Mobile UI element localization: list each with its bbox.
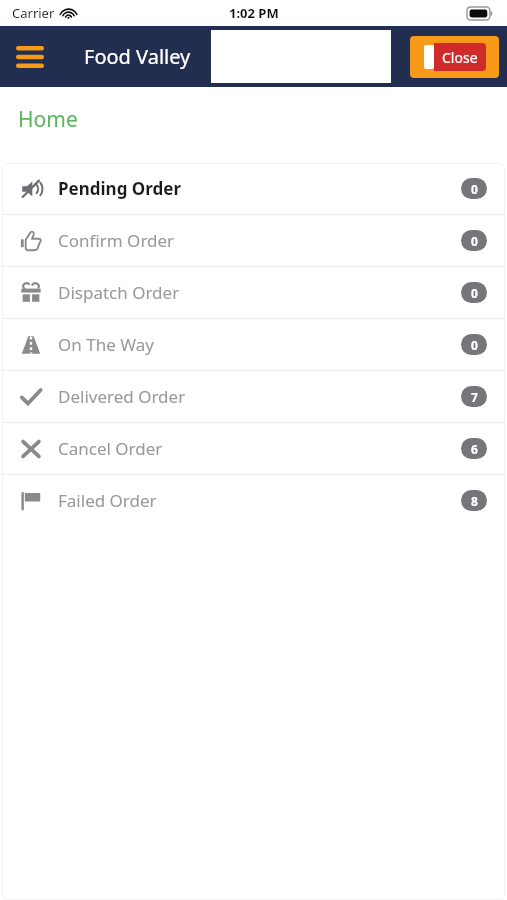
staticText: Carrier [12, 4, 55, 22]
button[interactable]: Pending Order [2, 163, 505, 214]
button[interactable]: Cancel Order [2, 423, 505, 474]
button[interactable]: Confirm Order [2, 215, 505, 266]
button[interactable]: Delivered Order [2, 371, 505, 422]
button[interactable]: On The Way [2, 319, 505, 370]
staticText: 0 [471, 181, 478, 197]
staticText: 0 [471, 233, 478, 249]
staticText: Dispatch Order [58, 281, 180, 304]
staticText: Delivered Order [58, 385, 186, 408]
staticText: 7 [471, 389, 478, 405]
button[interactable]: Home [18, 105, 78, 134]
staticText: 0 [471, 285, 478, 301]
staticText: Confirm Order [58, 229, 175, 252]
staticText: 8 [471, 493, 478, 509]
staticText: 6 [471, 441, 478, 457]
staticText: 0 [471, 337, 478, 353]
button[interactable]: Close [410, 36, 499, 78]
button[interactable]: Open menu [8, 35, 52, 79]
staticText: 1:02 PM [229, 4, 279, 22]
staticText: On The Way [58, 333, 154, 356]
button[interactable]: Dispatch Order [2, 267, 505, 318]
staticText: Cancel Order [58, 437, 163, 460]
button[interactable]: Failed Order [2, 475, 505, 526]
staticText: Failed Order [58, 489, 157, 512]
staticText: Pending Order [58, 177, 181, 200]
staticText: Food Valley [84, 43, 191, 70]
staticText: Close [442, 48, 478, 67]
